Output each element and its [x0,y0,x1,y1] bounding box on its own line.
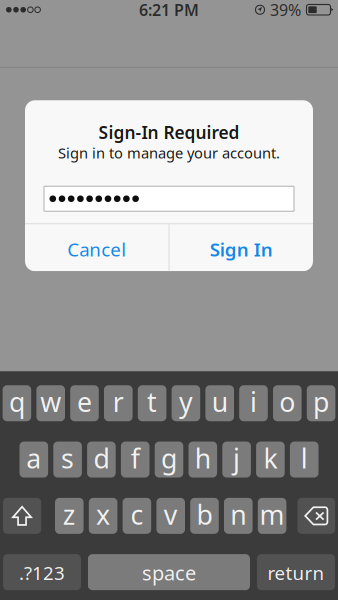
staticText: n [230,497,246,532]
staticText: e [77,384,92,419]
button[interactable]: c [123,498,151,534]
button[interactable]: z [55,498,84,534]
staticText: f [131,440,140,476]
staticText: h [195,440,211,476]
staticText: c [130,497,143,532]
button[interactable]: a [19,442,48,478]
button[interactable]: i [239,385,268,421]
staticText: space [142,559,196,586]
button[interactable]: o [273,385,302,421]
staticText: o [279,384,295,419]
button[interactable]: p [307,385,335,421]
button[interactable]: t [138,385,166,421]
button[interactable]: e [70,385,99,421]
button[interactable]: q [3,385,31,421]
button[interactable]: .?123 [3,554,81,590]
staticText: Cancel [67,237,126,262]
staticText: i [250,384,257,419]
button[interactable]: Shift [3,498,41,534]
button[interactable]: m [258,498,286,534]
staticText: 39% [270,0,301,20]
button[interactable]: u [205,385,234,421]
button[interactable]: b [190,498,219,534]
button[interactable]: w [36,385,65,421]
button[interactable]: k [256,442,285,478]
staticText: d [93,440,109,476]
button[interactable]: l [290,442,318,478]
staticText: r [113,384,124,419]
staticText: l [301,440,308,476]
staticText: u [212,384,228,419]
button[interactable]: Delete [297,498,335,534]
staticText: Sign-In Required [98,121,239,144]
staticText: s [61,440,74,476]
staticText: q [9,384,25,419]
staticText: v [164,497,178,532]
button[interactable]: n [224,498,253,534]
button[interactable]: space [88,554,250,590]
button[interactable]: Cancel [25,224,168,271]
button[interactable]: y [172,385,200,421]
staticText: Sign In [210,237,273,262]
button[interactable]: j [222,442,251,478]
button[interactable]: Sign In [169,224,313,271]
staticText: w [40,384,61,419]
staticText: a [26,440,41,476]
staticText: .?123 [19,560,65,585]
staticText: j [233,440,240,476]
button[interactable]: r [104,385,133,421]
staticText: return [267,560,324,585]
staticText: Sign in to manage your account. [58,143,280,162]
staticText: x [96,497,110,532]
staticText: b [196,497,212,532]
staticText: y [179,384,193,419]
button[interactable]: d [87,442,116,478]
button[interactable]: v [156,498,185,534]
staticText: t [147,384,157,419]
staticText: z [63,497,76,532]
button[interactable]: f [121,442,149,478]
button[interactable]: g [155,442,183,478]
staticText: m [260,497,285,532]
button[interactable]: x [89,498,117,534]
button[interactable]: return [257,554,335,590]
button[interactable]: s [53,442,82,478]
staticText: p [313,384,329,419]
staticText: 6:21 PM [139,0,199,20]
staticText: g [161,440,177,476]
staticText: k [263,440,277,476]
button[interactable]: h [188,442,217,478]
